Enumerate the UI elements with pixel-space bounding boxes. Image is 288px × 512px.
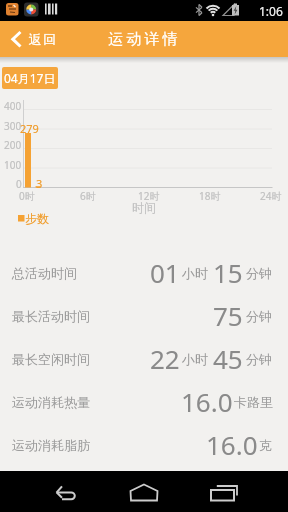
button[interactable] xyxy=(96,471,192,512)
staticText: 200 xyxy=(4,138,22,152)
staticText: 400 xyxy=(4,99,22,113)
staticText: 返回 xyxy=(28,31,57,47)
button[interactable]: 总活动时间 xyxy=(0,251,288,294)
staticText: 12时 xyxy=(138,189,160,203)
staticText: 最长空闲时间 xyxy=(12,351,90,367)
button[interactable]: 运动消耗脂肪 xyxy=(0,423,288,466)
staticText: 18时 xyxy=(199,189,221,203)
staticText: 300 xyxy=(4,119,22,133)
staticText: 279 xyxy=(20,121,39,136)
staticText: 运动消耗热量 xyxy=(12,394,90,410)
staticText: 15 xyxy=(213,255,243,290)
staticText: 总活动时间 xyxy=(12,265,77,281)
staticText: 最长活动时间 xyxy=(12,308,90,324)
button[interactable] xyxy=(0,471,96,512)
button[interactable]: 运动消耗热量 xyxy=(0,380,288,423)
staticText: 克 xyxy=(259,437,272,453)
staticText: 0 xyxy=(16,177,22,191)
button[interactable]: 最长活动时间 xyxy=(0,294,288,337)
button[interactable] xyxy=(192,471,288,512)
staticText: 24时 xyxy=(260,189,282,203)
staticText: 时间 xyxy=(132,200,156,215)
staticText: 16.0 xyxy=(206,427,258,462)
staticText: 04月17日 xyxy=(4,70,56,86)
staticText: 分钟 xyxy=(246,351,272,367)
staticText: 运动消耗脂肪 xyxy=(12,437,90,453)
staticText: 卡路里 xyxy=(234,394,273,410)
staticText: 100 xyxy=(4,158,22,172)
staticText: 3 xyxy=(36,176,43,191)
staticText: 16.0 xyxy=(181,384,233,419)
staticText: 1:06 xyxy=(259,3,283,19)
staticText: 01 xyxy=(150,255,180,290)
staticText: 75 xyxy=(213,298,243,333)
staticText: 运动详情 xyxy=(108,30,181,49)
button[interactable]: 返回 xyxy=(28,31,57,47)
staticText: 0时 xyxy=(19,189,35,203)
staticText: 分钟 xyxy=(246,308,272,324)
staticText: 45 xyxy=(213,341,243,376)
staticText: 步数 xyxy=(25,211,49,226)
staticText: 6时 xyxy=(80,189,96,203)
staticText: 小时 xyxy=(182,265,208,281)
button[interactable]: 04月17日 xyxy=(2,67,58,89)
staticText: 22 xyxy=(150,341,180,376)
staticText: 小时 xyxy=(182,351,208,367)
button[interactable]: 最长空闲时间 xyxy=(0,337,288,380)
staticText: 分钟 xyxy=(246,265,272,281)
